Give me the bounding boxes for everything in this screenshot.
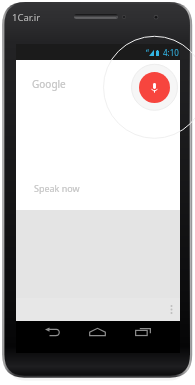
button[interactable]: Voice search xyxy=(139,72,170,103)
staticText: 1Car.ir xyxy=(12,11,41,24)
staticText: 4:10 xyxy=(163,47,179,58)
staticText: Google xyxy=(32,77,66,91)
button[interactable]: More options xyxy=(163,298,180,321)
button[interactable]: Back xyxy=(30,321,74,343)
staticText: Speak now xyxy=(34,182,80,194)
button[interactable]: Recent apps xyxy=(121,321,165,343)
button[interactable]: Home xyxy=(75,321,119,343)
